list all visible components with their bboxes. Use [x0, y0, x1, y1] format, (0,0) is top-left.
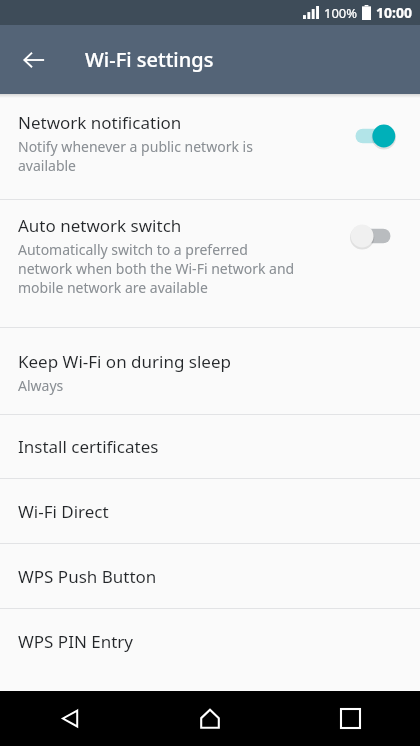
staticText: WPS PIN Entry: [18, 630, 134, 653]
button[interactable]: Keep Wi-Fi on during sleep: [0, 328, 420, 414]
staticText: Install certificates: [18, 435, 159, 458]
button[interactable]: Off: [350, 220, 402, 252]
button[interactable]: WPS Push Button: [0, 544, 420, 608]
button[interactable]: Install certificates: [0, 415, 420, 478]
staticText: Wi-Fi Direct: [18, 500, 109, 523]
staticText: Always: [18, 376, 64, 395]
button[interactable]: Auto network switch: [0, 200, 420, 327]
button[interactable]: WPS PIN Entry: [0, 609, 420, 673]
button[interactable]: Recents: [280, 691, 420, 746]
button[interactable]: Network notification: [0, 98, 420, 199]
staticText: Wi-Fi settings: [85, 46, 214, 73]
staticText: Notify whenever a public network is avai…: [18, 137, 253, 175]
staticText: Automatically switch to a preferred netw…: [18, 240, 295, 297]
button[interactable]: Back: [0, 691, 140, 746]
button[interactable]: On: [350, 120, 402, 152]
button[interactable]: Home: [140, 691, 280, 746]
staticText: Keep Wi-Fi on during sleep: [18, 350, 231, 373]
staticText: WPS Push Button: [18, 565, 157, 588]
staticText: Auto network switch: [18, 214, 182, 237]
staticText: 10:00: [376, 3, 412, 22]
button[interactable]: Wi-Fi Direct: [0, 479, 420, 543]
staticText: 100%: [324, 4, 358, 22]
staticText: Network notification: [18, 111, 182, 134]
button[interactable]: Back: [10, 36, 58, 84]
